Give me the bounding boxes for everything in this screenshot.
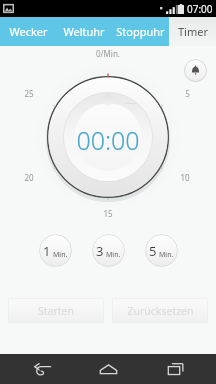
staticText: Weltuhr: [63, 24, 105, 39]
button[interactable]: Starten: [8, 298, 104, 323]
button[interactable]: Back: [17, 354, 67, 384]
staticText: 00:00: [76, 123, 140, 157]
button[interactable]: 3: [92, 234, 125, 267]
staticText: 3: [96, 242, 104, 260]
staticText: Timer: [178, 24, 208, 39]
button[interactable]: Weltuhr: [56, 17, 111, 46]
staticText: 07:00: [187, 2, 213, 16]
staticText: Min.: [53, 250, 68, 260]
staticText: Stoppuhr: [116, 24, 165, 39]
button[interactable]: Wecker: [0, 17, 56, 46]
staticText: 0/Min.: [96, 48, 120, 59]
staticText: 1: [43, 242, 51, 260]
staticText: 15: [103, 208, 113, 219]
staticText: Starten: [38, 304, 74, 318]
button[interactable]: 5: [145, 234, 178, 267]
button[interactable]: Home: [83, 354, 133, 384]
staticText: Zurücksetzen: [127, 304, 194, 318]
staticText: 10: [180, 172, 190, 183]
button[interactable]: 1: [39, 234, 72, 267]
button[interactable]: Stoppuhr: [111, 17, 169, 46]
staticText: 20: [24, 172, 34, 183]
button[interactable]: [13, 47, 203, 227]
button[interactable]: Alarm sound: [184, 59, 207, 82]
staticText: Wecker: [9, 24, 48, 39]
staticText: 25: [24, 88, 34, 99]
staticText: Min.: [106, 250, 121, 260]
staticText: 5: [185, 88, 190, 99]
button[interactable]: Timer: [169, 17, 216, 46]
staticText: 5: [149, 242, 157, 260]
button[interactable]: Recent apps: [150, 354, 200, 384]
button[interactable]: Zurücksetzen: [112, 298, 208, 323]
staticText: Min.: [159, 250, 174, 260]
